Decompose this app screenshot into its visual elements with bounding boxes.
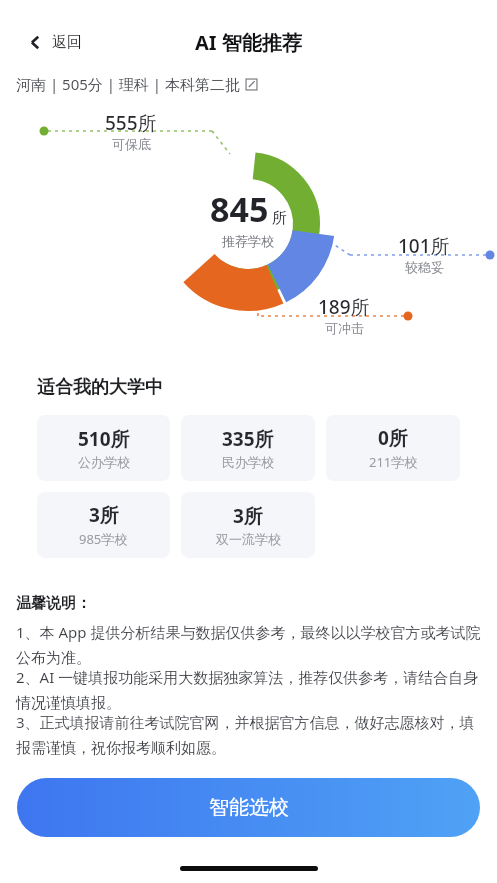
staticText: 3所 [233,503,263,529]
staticText: 较稳妥 [405,259,444,275]
button[interactable]: 335所 [181,415,315,481]
button[interactable]: 0所 [326,415,460,481]
staticText: 101所 [398,233,450,259]
staticText: 温馨说明： [16,594,91,613]
staticText: 推荐学校 [222,233,274,249]
staticText: 510所 [78,426,130,452]
button[interactable]: 河南 | 505分 | 理科 | 本科第二批 [16,74,497,94]
staticText: 3、正式填报请前往考试院官网，并根据官方信息，做好志愿核对，填报需谨慎，祝你报考… [16,712,481,757]
staticText: 民办学校 [222,454,274,470]
button[interactable]: 3所 [181,492,315,558]
staticText: 845 [210,186,269,232]
staticText: 2、AI 一键填报功能采用大数据独家算法，推荐仅供参考，请结合自身情况谨慎填报。 [16,667,481,712]
staticText: 555所 [105,110,157,136]
staticText: 335所 [222,426,274,452]
button[interactable]: 返回 [28,33,82,52]
staticText: 189所 [318,294,370,320]
button[interactable]: 智能选校 [17,778,480,837]
button[interactable]: 510所 [37,415,170,481]
staticText: 智能选校 [209,795,289,820]
staticText: 适合我的大学中 [37,376,163,399]
staticText: AI 智能推荐 [195,29,302,56]
staticText: 3所 [89,502,119,528]
staticText: 公办学校 [78,454,130,470]
staticText: 0所 [378,425,408,451]
staticText: 所 [272,209,287,228]
staticText: 双一流学校 [216,531,281,547]
staticText: 可保底 [112,136,151,152]
staticText: 返回 [52,33,82,52]
button[interactable]: 3所 [37,492,170,558]
staticText: 211学校 [369,453,418,471]
staticText: 河南 | 505分 | 理科 | 本科第二批 [16,74,240,94]
staticText: 可冲击 [325,320,364,336]
staticText: 985学校 [79,530,128,548]
staticText: 1、本 App 提供分析结果与数据仅供参考，最终以以学校官方或考试院公布为准。 [16,622,481,667]
